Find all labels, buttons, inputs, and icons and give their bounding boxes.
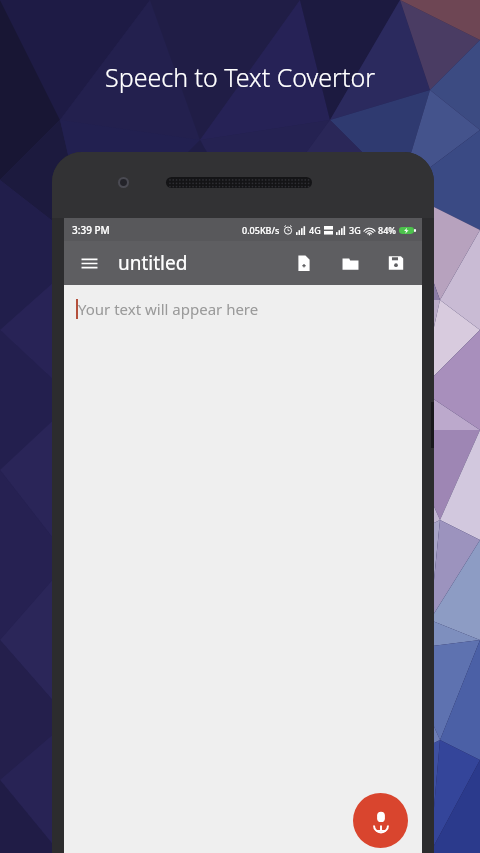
staticText: 0.05KB/s (242, 224, 280, 236)
staticText: 3:39 PM (72, 223, 110, 237)
staticText: 3G (349, 224, 361, 236)
button[interactable]: Open navigation menu (72, 246, 106, 280)
staticText: Your text will appear here (78, 299, 259, 319)
staticText: Speech to Text Covertor (0, 60, 480, 94)
staticText: untitled (118, 250, 188, 276)
button[interactable]: Start voice input (353, 793, 408, 848)
staticText: 84% (378, 224, 396, 236)
button[interactable]: Open file (332, 245, 368, 281)
staticText: 4G (309, 224, 321, 236)
button[interactable]: Save (378, 245, 414, 281)
button[interactable]: New file (286, 245, 322, 281)
